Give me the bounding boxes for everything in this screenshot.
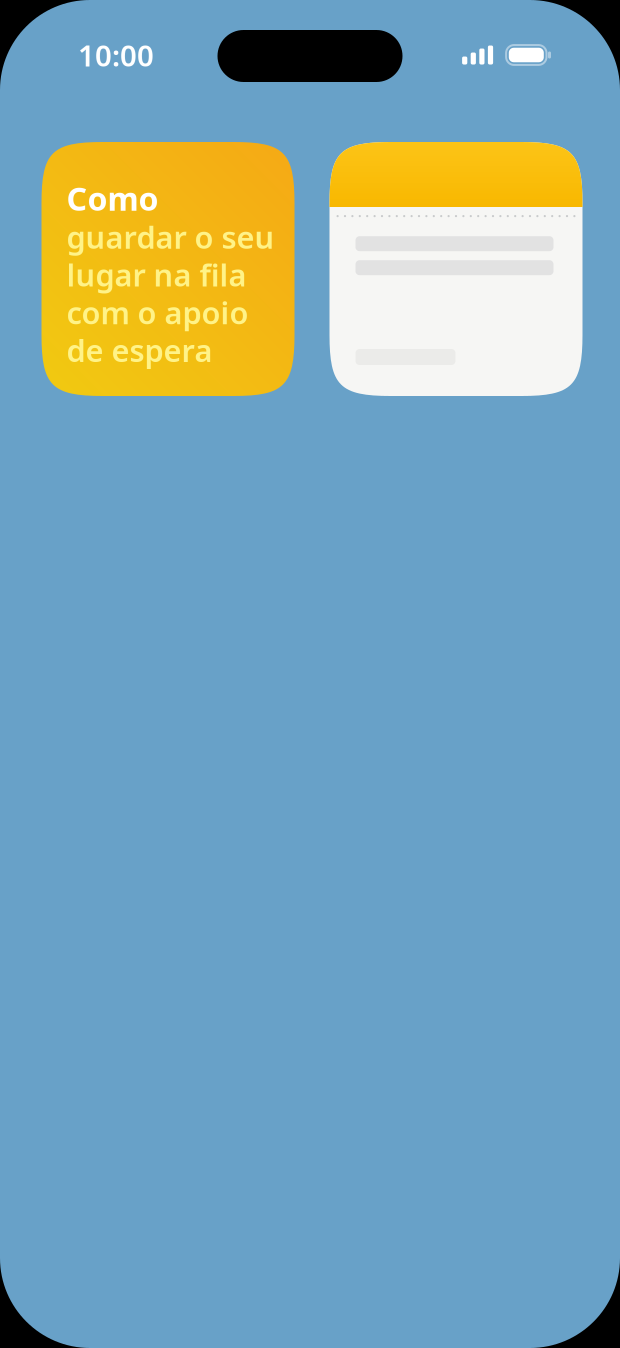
staticText: com o apoio bbox=[66, 292, 248, 333]
staticText: Como bbox=[66, 177, 158, 219]
staticText: lugar na fila bbox=[66, 254, 246, 295]
staticText: de espera bbox=[66, 330, 212, 370]
button[interactable]: Como bbox=[41, 142, 294, 396]
button[interactable] bbox=[329, 142, 582, 396]
staticText: 10:00 bbox=[78, 35, 154, 74]
staticText: guardar o seu bbox=[66, 216, 274, 257]
